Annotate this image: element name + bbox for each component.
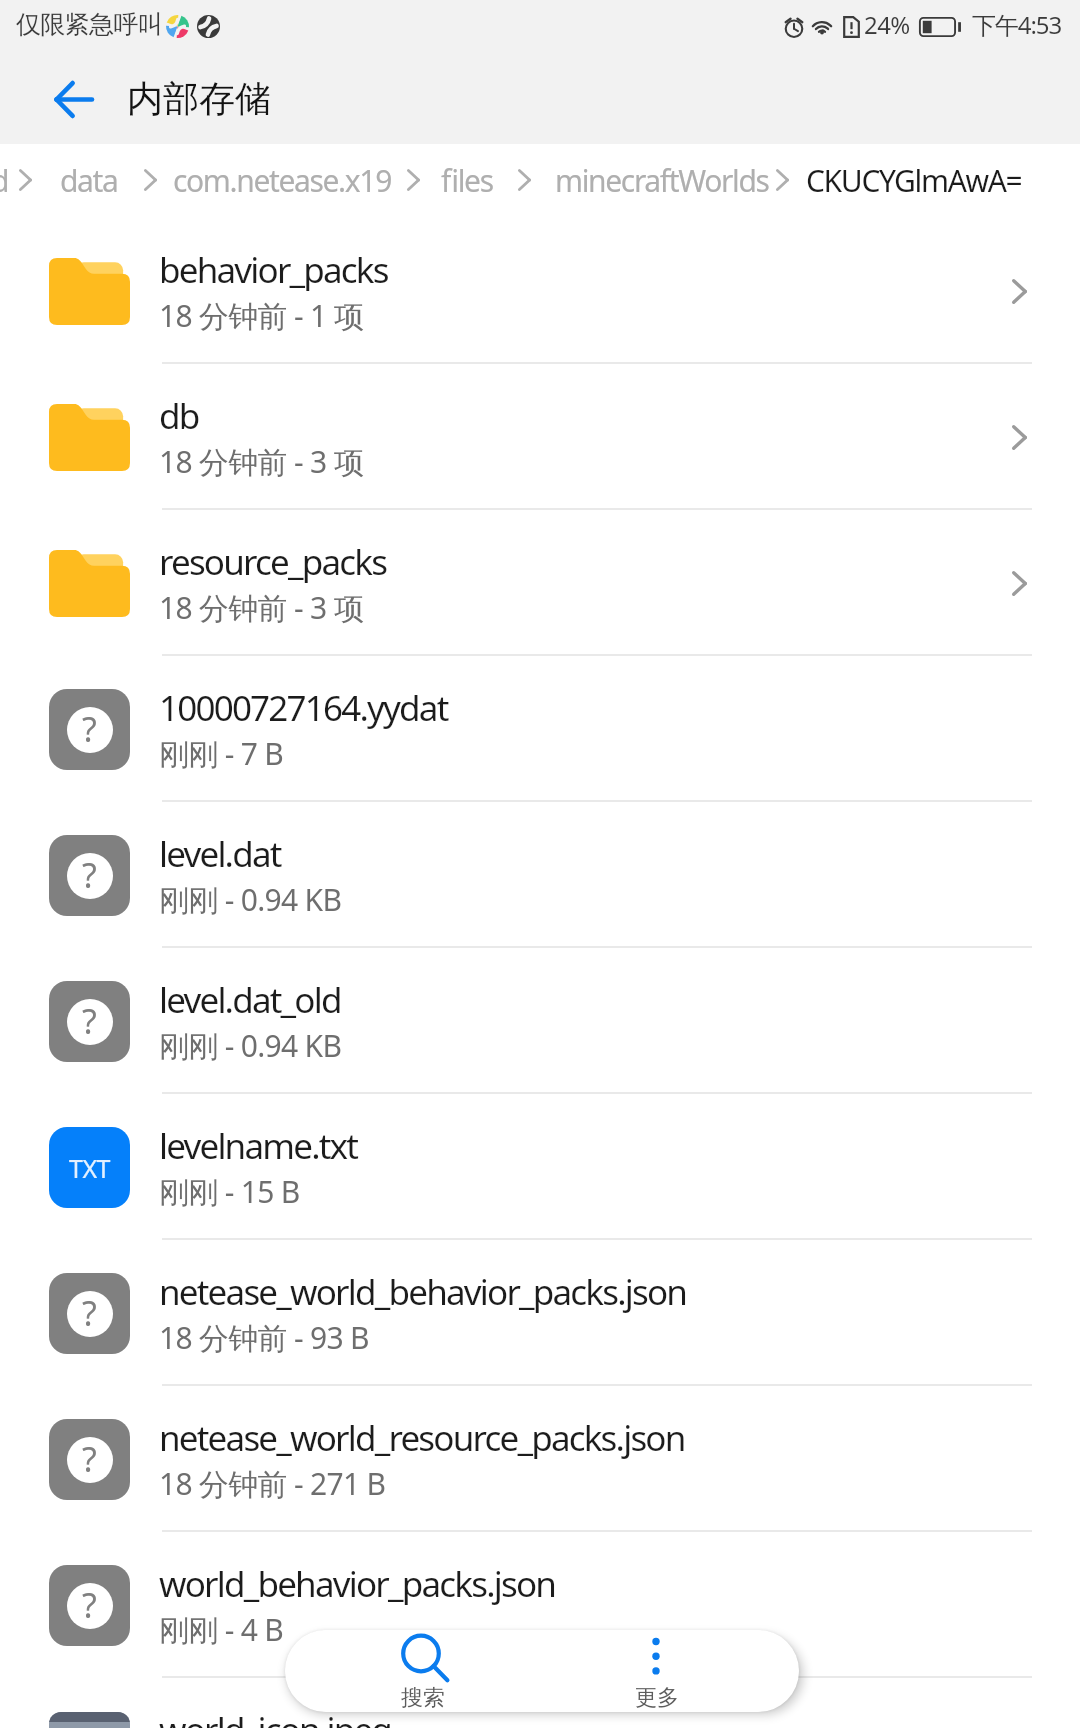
staticText: ?	[82, 999, 97, 1044]
staticText: ?	[82, 1437, 97, 1482]
button[interactable]: com.netease.x19	[173, 143, 391, 217]
staticText: 内部存储	[127, 76, 271, 121]
button[interactable]: 搜索	[285, 1630, 537, 1712]
staticText: ?	[82, 853, 97, 898]
button[interactable]: world_icon.jpeg	[0, 1678, 1080, 1728]
button[interactable]: minecraftWorlds	[555, 143, 769, 217]
button[interactable]: files	[441, 143, 493, 217]
staticText: ?	[82, 707, 97, 752]
button[interactable]: TXT	[0, 1094, 1080, 1240]
staticText: 刚刚 - 15 B	[159, 1171, 300, 1212]
staticText: 18 分钟前 - 3 项	[159, 587, 363, 628]
staticText: resource_packs	[159, 538, 387, 586]
staticText: level.dat_old	[159, 976, 341, 1024]
button[interactable]: d	[0, 143, 9, 217]
staticText: files	[441, 160, 493, 201]
button[interactable]: Back	[36, 62, 110, 136]
button[interactable]: ?	[0, 1240, 1080, 1386]
button[interactable]: ?	[0, 1532, 1080, 1678]
staticText: data	[60, 160, 118, 201]
button[interactable]: CKUCYGlmAwA=	[806, 143, 1022, 217]
staticText: behavior_packs	[159, 246, 388, 294]
staticText: levelname.txt	[159, 1122, 358, 1170]
button[interactable]: data	[60, 143, 118, 217]
staticText: world_behavior_packs.json	[159, 1560, 556, 1608]
staticText: TXT	[69, 1151, 110, 1185]
staticText: 刚刚 - 7 B	[159, 733, 284, 774]
button[interactable]: db	[0, 364, 1080, 510]
staticText: d	[0, 160, 9, 201]
button[interactable]: ?	[0, 656, 1080, 802]
staticText: ?	[82, 1583, 97, 1628]
staticText: 仅限紧急呼叫	[16, 9, 163, 40]
staticText: netease_world_behavior_packs.json	[159, 1268, 687, 1316]
staticText: 18 分钟前 - 271 B	[159, 1463, 386, 1504]
staticText: 10000727164.yydat	[159, 684, 448, 732]
staticText: 刚刚 - 0.94 KB	[159, 879, 342, 920]
staticText: com.netease.x19	[173, 160, 391, 201]
button[interactable]: ?	[0, 1386, 1080, 1532]
button[interactable]: 更多	[537, 1630, 799, 1712]
staticText: 18 分钟前 - 3 项	[159, 441, 363, 482]
staticText: 搜索	[401, 1684, 445, 1712]
staticText: 18 分钟前 - 1 项	[159, 295, 363, 336]
staticText: CKUCYGlmAwA=	[806, 160, 1022, 201]
staticText: 下午4:53	[972, 8, 1062, 41]
staticText: 刚刚 - 0.94 KB	[159, 1025, 342, 1066]
button[interactable]: resource_packs	[0, 510, 1080, 656]
staticText: 24%	[864, 8, 910, 41]
staticText: world_icon.jpeg	[159, 1706, 392, 1728]
staticText: 更多	[635, 1684, 679, 1712]
staticText: 刚刚 - 4 B	[159, 1609, 284, 1650]
button[interactable]: behavior_packs	[0, 218, 1080, 364]
button[interactable]: ?	[0, 802, 1080, 948]
staticText: netease_world_resource_packs.json	[159, 1414, 685, 1462]
button[interactable]: ?	[0, 948, 1080, 1094]
staticText: ?	[82, 1291, 97, 1336]
staticText: level.dat	[159, 830, 281, 878]
staticText: minecraftWorlds	[555, 160, 769, 201]
staticText: 18 分钟前 - 93 B	[159, 1317, 369, 1358]
staticText: db	[159, 392, 199, 440]
